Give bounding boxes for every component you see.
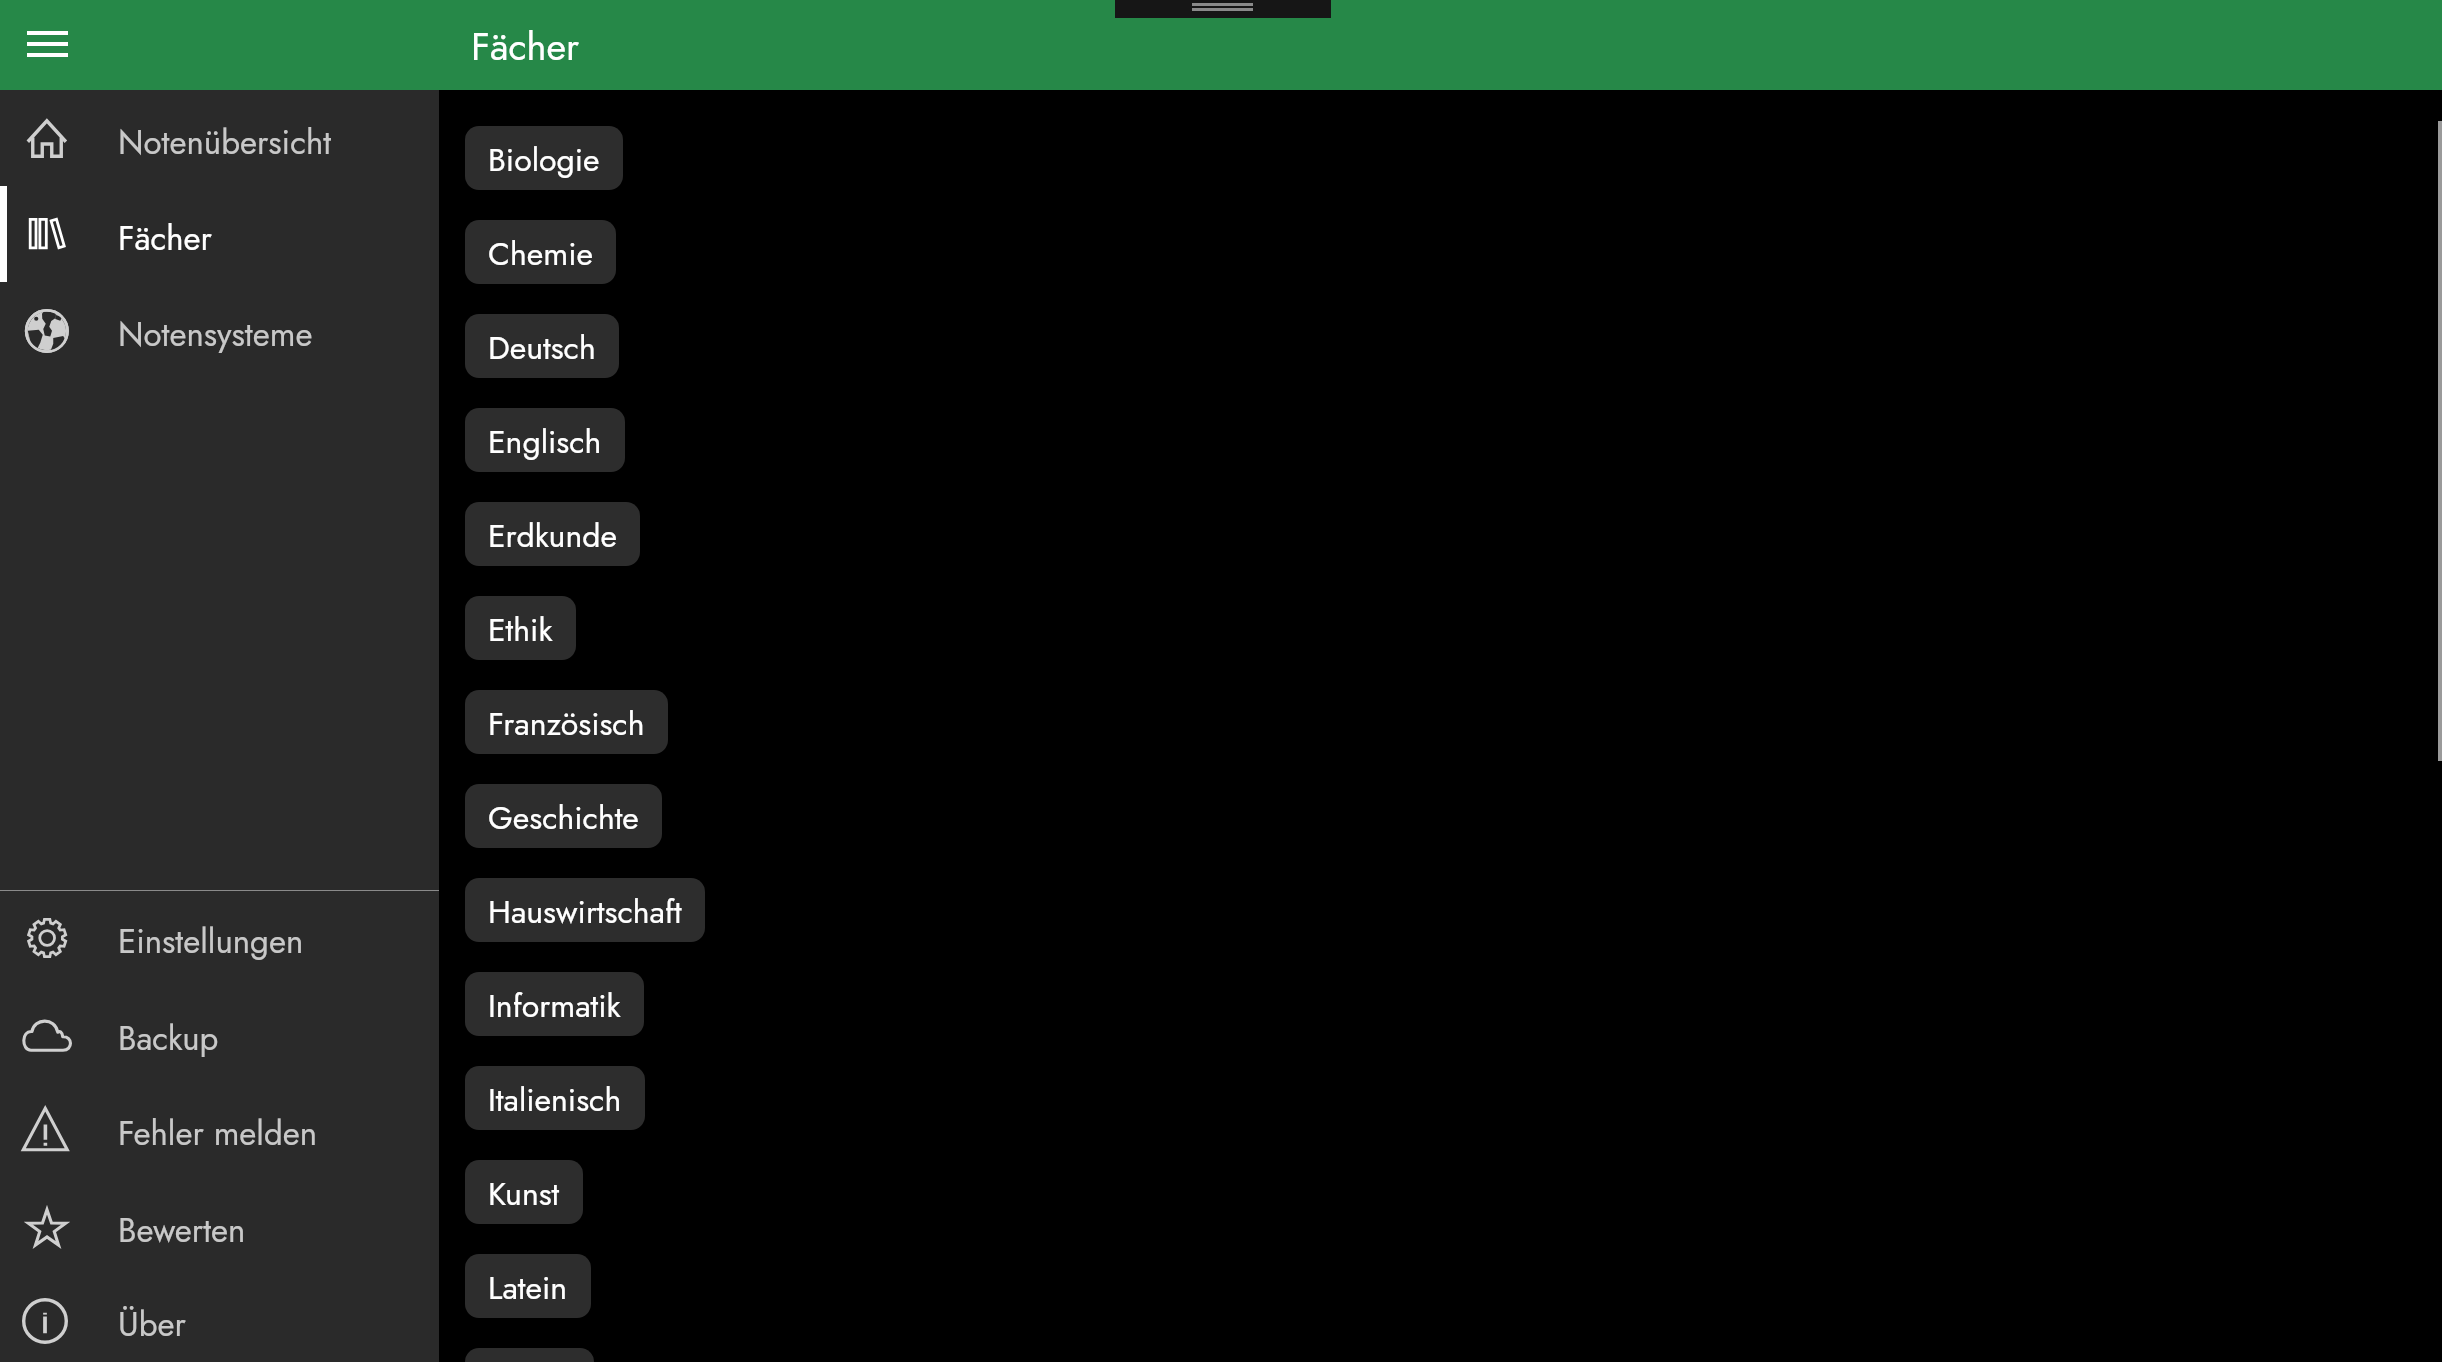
staticText: Bewerten [118, 1207, 246, 1255]
staticText: Latein [488, 1265, 568, 1311]
staticText: Italienisch [488, 1077, 622, 1123]
button[interactable]: Über [0, 1273, 439, 1362]
button[interactable]: Notensysteme [0, 283, 439, 379]
button[interactable]: Biologie [465, 126, 623, 190]
staticText: Fächer [471, 19, 580, 74]
button[interactable]: Ethik [465, 596, 576, 660]
staticText: Informatik [488, 983, 621, 1029]
button[interactable]: Deutsch [465, 314, 619, 378]
button[interactable]: Notenübersicht [0, 91, 439, 187]
button[interactable]: Französisch [465, 690, 668, 754]
staticText: Erdkunde [488, 513, 617, 559]
staticText: Geschichte [488, 795, 639, 841]
button[interactable]: Mathe [465, 1348, 594, 1362]
staticText: Über [118, 1301, 186, 1349]
staticText: Einstellungen [118, 918, 304, 966]
button[interactable]: Bewerten [0, 1179, 439, 1275]
staticText: Fehler melden [118, 1110, 318, 1158]
staticText: Notensysteme [118, 311, 313, 359]
button[interactable]: Chemie [465, 220, 616, 284]
staticText: Kunst [488, 1171, 560, 1217]
button[interactable]: Kunst [465, 1160, 583, 1224]
staticText: Chemie [488, 231, 593, 277]
button[interactable]: Backup [0, 987, 439, 1083]
staticText: Ethik [488, 607, 553, 653]
button[interactable]: Informatik [465, 972, 644, 1036]
button[interactable]: Einstellungen [0, 890, 439, 986]
staticText: Backup [118, 1015, 219, 1063]
staticText: Französisch [488, 701, 645, 747]
button[interactable]: Englisch [465, 408, 625, 472]
staticText: Englisch [488, 419, 602, 465]
button[interactable]: Fächer [0, 187, 439, 283]
button[interactable]: Open navigation menu [20, 17, 74, 71]
staticText: Hauswirtschaft [488, 889, 682, 935]
button[interactable]: Erdkunde [465, 502, 640, 566]
staticText: Fächer [118, 215, 212, 263]
staticText: Biologie [488, 137, 600, 183]
button[interactable]: Geschichte [465, 784, 662, 848]
button[interactable]: Hauswirtschaft [465, 878, 705, 942]
button[interactable]: Latein [465, 1254, 591, 1318]
button[interactable]: Fehler melden [0, 1082, 439, 1178]
staticText: Deutsch [488, 325, 596, 371]
staticText: Notenübersicht [118, 119, 332, 167]
button[interactable]: Italienisch [465, 1066, 645, 1130]
